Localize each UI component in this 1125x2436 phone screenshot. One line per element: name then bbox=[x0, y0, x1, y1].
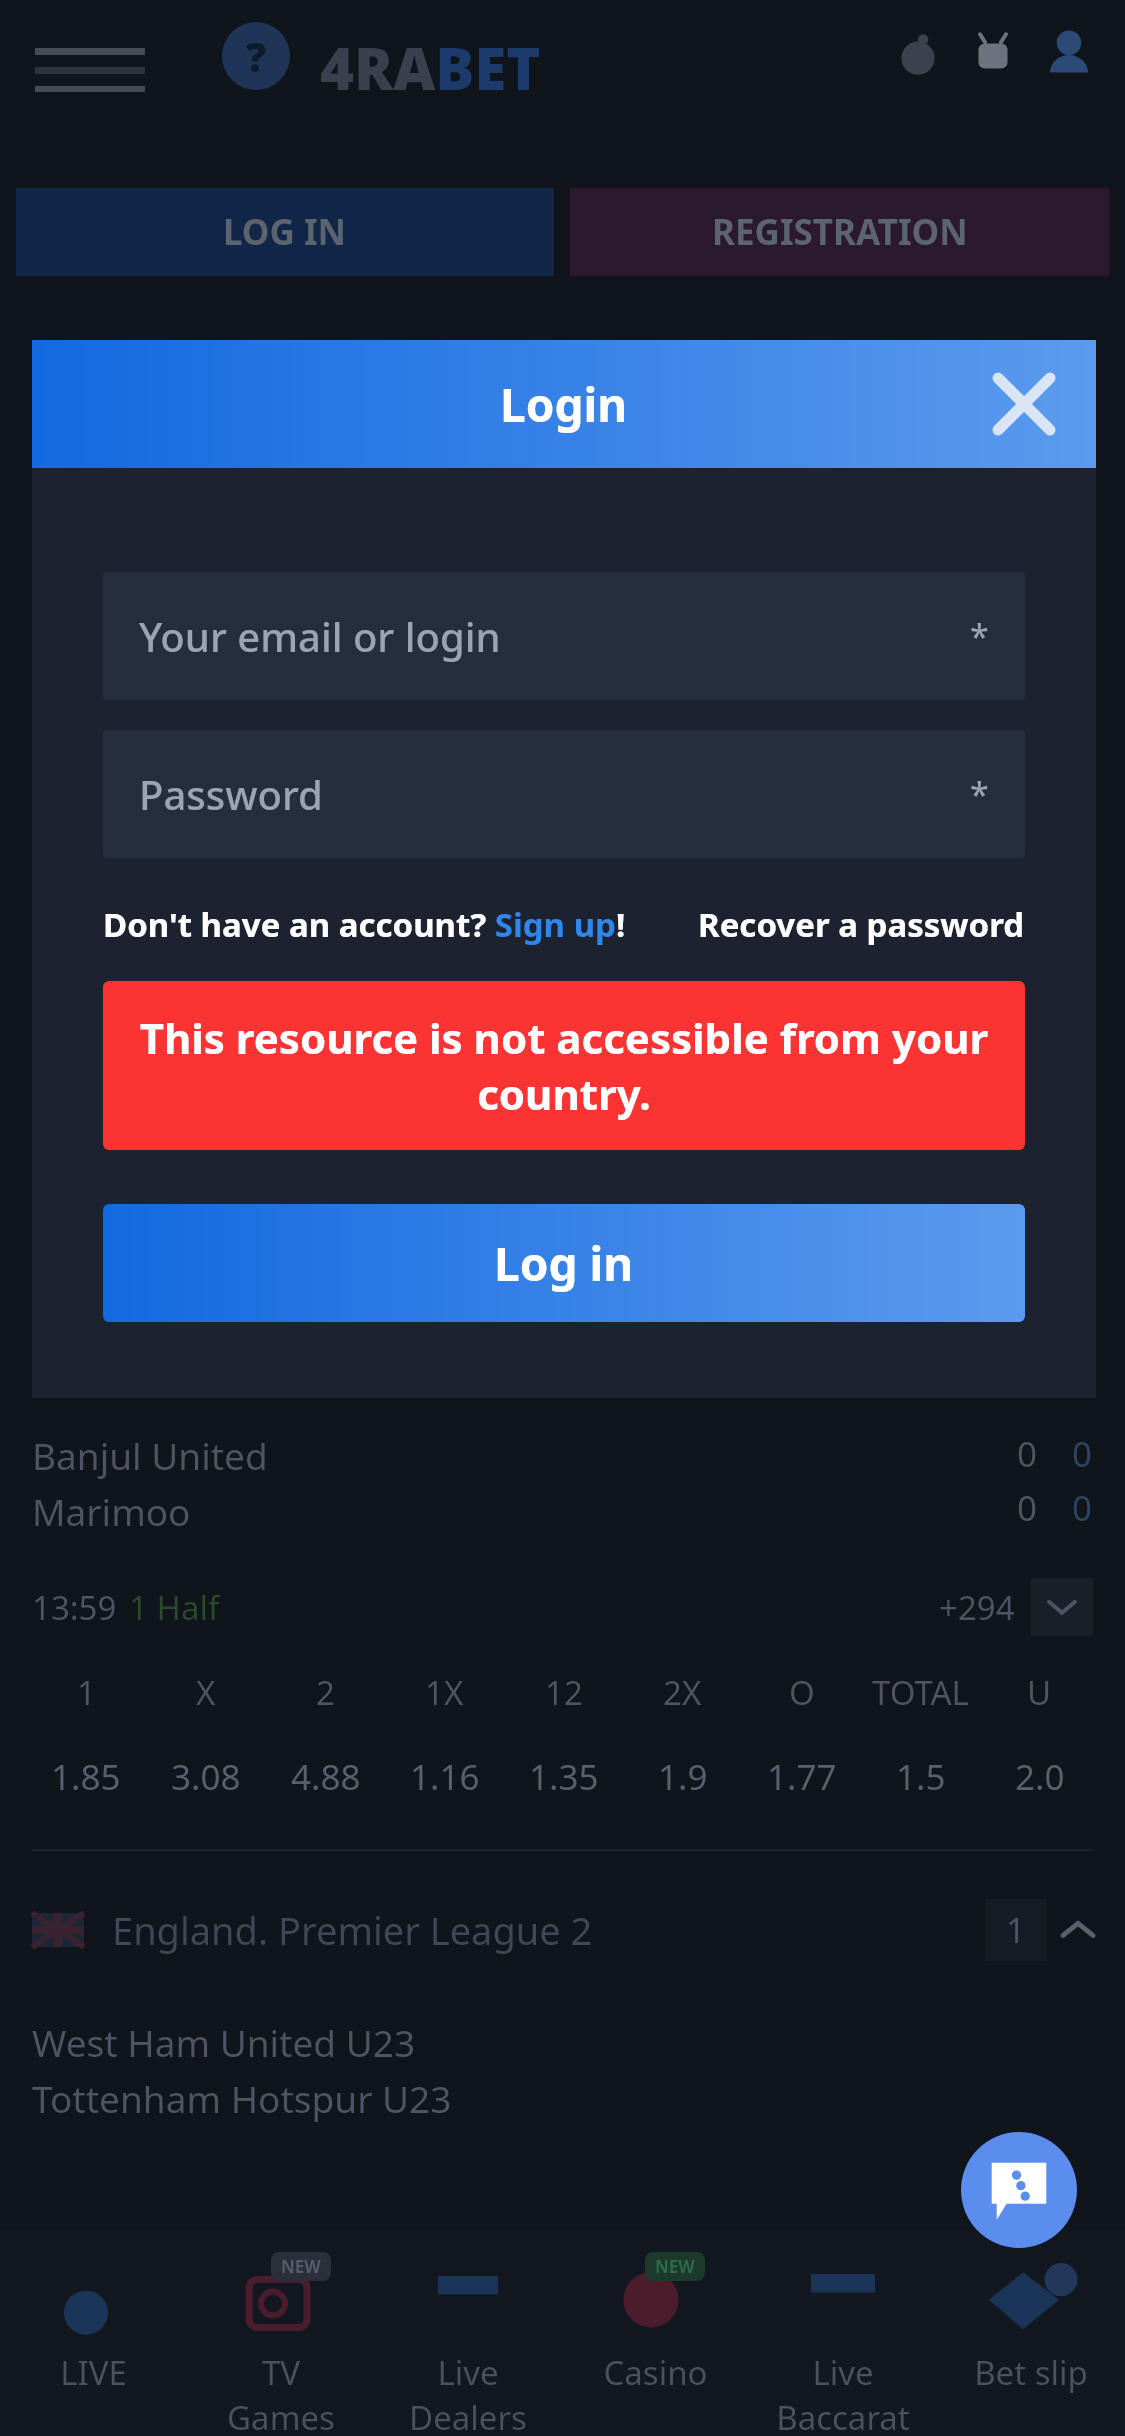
staticText: Don't have an account? Sign up! bbox=[103, 902, 626, 947]
staticText: West Ham United U23 bbox=[32, 2017, 416, 2067]
button[interactable]: Recover a password bbox=[698, 902, 1025, 947]
staticText: 1.9 bbox=[658, 1753, 708, 1801]
button[interactable]: Menu bbox=[35, 48, 145, 92]
staticText: 1X bbox=[425, 1670, 464, 1715]
button[interactable]: NEW bbox=[561, 2252, 749, 2436]
staticText: * bbox=[970, 771, 989, 817]
staticText: 2 bbox=[316, 1670, 335, 1715]
staticText: Password bbox=[139, 767, 323, 821]
staticText: NEW bbox=[655, 2255, 695, 2278]
staticText: 1.5 bbox=[896, 1753, 946, 1801]
staticText: REGISTRATION bbox=[712, 208, 968, 256]
button[interactable]: REGISTRATION bbox=[570, 188, 1109, 276]
staticText: Banjul United bbox=[32, 1430, 268, 1480]
staticText: ? bbox=[246, 29, 267, 83]
staticText: U bbox=[1027, 1670, 1052, 1715]
button[interactable]: 1.35 bbox=[504, 1753, 623, 1801]
staticText: O bbox=[789, 1670, 815, 1715]
button[interactable]: England. Premier League 2 bbox=[32, 1899, 1093, 1961]
button[interactable]: Live Baccarat bbox=[749, 2252, 937, 2436]
staticText: 4RABET bbox=[320, 28, 541, 107]
button[interactable]: Don't have an account? Sign up! bbox=[103, 902, 626, 947]
button[interactable]: Account bbox=[1041, 26, 1097, 82]
button[interactable]: Android app bbox=[967, 28, 1019, 80]
staticText: 1.85 bbox=[51, 1753, 121, 1801]
button[interactable]: NEW bbox=[187, 2252, 374, 2436]
staticText: +294 bbox=[939, 1585, 1015, 1630]
staticText: 3.08 bbox=[171, 1753, 241, 1801]
staticText: TOTAL bbox=[872, 1670, 969, 1715]
staticText: 0 bbox=[1017, 1484, 1038, 1532]
button[interactable]: iOS app bbox=[893, 28, 945, 80]
button[interactable]: 2.0 bbox=[980, 1753, 1099, 1801]
staticText: Log in bbox=[494, 1232, 634, 1295]
staticText: LOG IN bbox=[223, 208, 347, 256]
staticText: Live Baccarat bbox=[776, 2350, 910, 2436]
button[interactable]: Expand bbox=[1031, 1578, 1093, 1636]
staticText: 1 bbox=[1006, 1907, 1026, 1953]
staticText: Tottenham Hotspur U23 bbox=[32, 2073, 452, 2123]
button[interactable]: 1.9 bbox=[623, 1753, 742, 1801]
staticText: Live Dealers bbox=[409, 2350, 527, 2436]
staticText: 1.35 bbox=[529, 1753, 599, 1801]
staticText: 2.0 bbox=[1015, 1753, 1065, 1801]
staticText: England. Premier League 2 bbox=[112, 1904, 593, 1956]
staticText: This resource is not accessible from you… bbox=[127, 1009, 1001, 1122]
button[interactable]: 1.77 bbox=[742, 1753, 861, 1801]
staticText: Bet slip bbox=[974, 2350, 1088, 2395]
button[interactable]: LIVE bbox=[0, 2252, 187, 2436]
staticText: 1 Half bbox=[129, 1585, 220, 1630]
button[interactable]: Password bbox=[103, 730, 1025, 858]
staticText: TV Games bbox=[227, 2350, 335, 2436]
button[interactable]: Bet slip bbox=[937, 2252, 1125, 2436]
staticText: Marimoo bbox=[32, 1486, 191, 1536]
staticText: Login bbox=[500, 373, 628, 436]
button[interactable]: Log in bbox=[103, 1204, 1025, 1322]
staticText: Your email or login bbox=[139, 609, 501, 663]
staticText: 1.77 bbox=[767, 1753, 837, 1801]
staticText: 12 bbox=[545, 1670, 583, 1715]
button[interactable]: Help bbox=[222, 22, 290, 90]
button[interactable]: Chat support bbox=[961, 2132, 1077, 2248]
button[interactable]: Live Dealers bbox=[374, 2252, 561, 2436]
button[interactable]: 1.16 bbox=[385, 1753, 504, 1801]
staticText: Casino bbox=[603, 2350, 708, 2395]
staticText: 1.16 bbox=[410, 1753, 480, 1801]
staticText: 0 bbox=[1017, 1430, 1038, 1478]
staticText: LIVE bbox=[60, 2350, 127, 2395]
staticText: 4.88 bbox=[291, 1753, 361, 1801]
button[interactable]: 4.88 bbox=[266, 1753, 385, 1801]
button[interactable]: 1.85 bbox=[26, 1753, 146, 1801]
staticText: 2X bbox=[663, 1670, 702, 1715]
staticText: Recover a password bbox=[698, 902, 1025, 947]
staticText: * bbox=[970, 613, 989, 659]
button[interactable]: LOG IN bbox=[16, 188, 554, 276]
button[interactable]: 1.5 bbox=[861, 1753, 980, 1801]
button[interactable]: Your email or login bbox=[103, 572, 1025, 700]
staticText: 0 bbox=[1072, 1484, 1093, 1532]
staticText: NEW bbox=[281, 2255, 321, 2278]
staticText: 0 bbox=[1072, 1430, 1093, 1478]
button[interactable]: Close bbox=[986, 366, 1062, 442]
staticText: X bbox=[196, 1670, 216, 1715]
staticText: 1 bbox=[77, 1670, 96, 1715]
staticText: 13:59 bbox=[32, 1585, 117, 1630]
button[interactable]: 3.08 bbox=[146, 1753, 266, 1801]
